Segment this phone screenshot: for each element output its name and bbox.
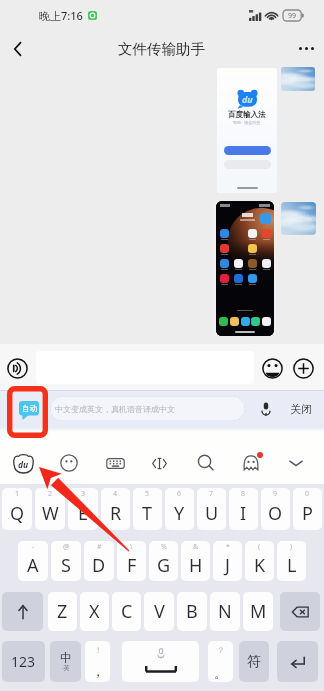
staticText: ·英 bbox=[62, 664, 70, 672]
button[interactable]: Translate input bbox=[50, 396, 245, 421]
staticText: 关闭 bbox=[290, 402, 312, 416]
button[interactable]: C bbox=[112, 592, 141, 631]
staticText: T bbox=[142, 501, 153, 526]
button[interactable]: Avatar bbox=[281, 202, 316, 235]
staticText: 2 bbox=[48, 489, 53, 499]
staticText: 5 bbox=[145, 489, 150, 499]
staticText: N bbox=[218, 599, 232, 624]
button[interactable]: Space bbox=[122, 641, 199, 682]
staticText: \ bbox=[130, 542, 133, 552]
staticText: du bbox=[242, 93, 253, 105]
button[interactable]: Emoticons bbox=[52, 446, 86, 480]
staticText: L bbox=[287, 553, 297, 578]
staticText: B bbox=[186, 599, 198, 624]
button[interactable]: Microphone bbox=[255, 398, 277, 420]
button[interactable]: 1 bbox=[2, 488, 32, 530]
button[interactable]: 7 bbox=[197, 488, 226, 530]
button[interactable]: @ bbox=[51, 541, 81, 581]
staticText: # bbox=[97, 542, 102, 552]
button[interactable]: 123 bbox=[2, 641, 45, 682]
button[interactable]: Keyboard layout bbox=[98, 446, 132, 480]
staticText: 中 bbox=[60, 650, 72, 665]
staticText: Y bbox=[174, 501, 185, 526]
button[interactable]: 8 bbox=[229, 488, 258, 530]
staticText: O bbox=[268, 501, 283, 526]
staticText: 7 bbox=[209, 489, 214, 499]
button[interactable]: * bbox=[213, 541, 242, 581]
button[interactable]: Screenshot bbox=[217, 68, 277, 193]
button[interactable]: 4 bbox=[101, 488, 130, 530]
button[interactable]: X bbox=[80, 592, 109, 631]
staticText: 百度输入法 bbox=[228, 110, 266, 119]
staticText: S bbox=[61, 553, 71, 578]
button[interactable]: Shift bbox=[2, 592, 43, 631]
staticText: ( bbox=[258, 542, 261, 552]
button[interactable]: 5 bbox=[133, 488, 162, 530]
button[interactable]: Backspace bbox=[280, 592, 320, 631]
button[interactable]: Add bbox=[288, 353, 318, 383]
staticText: J bbox=[225, 553, 230, 578]
button[interactable]: Voice input bbox=[2, 353, 32, 383]
staticText: 3 bbox=[81, 489, 86, 499]
staticText: P bbox=[302, 501, 313, 526]
staticText: U bbox=[205, 501, 219, 526]
button[interactable]: 6 bbox=[165, 488, 194, 530]
staticText: D bbox=[92, 553, 106, 578]
button[interactable]: Stickers bbox=[234, 446, 268, 480]
button[interactable]: 中 bbox=[50, 641, 81, 682]
staticText: % bbox=[161, 542, 167, 552]
button[interactable]: Auto translate bbox=[19, 401, 39, 420]
button[interactable]: Cursor control bbox=[142, 446, 176, 480]
button[interactable]: N bbox=[210, 592, 240, 631]
button[interactable]: % bbox=[149, 541, 178, 581]
staticText: du bbox=[18, 459, 29, 471]
staticText: 99 bbox=[288, 11, 297, 21]
staticText: 文件传输助手 bbox=[118, 40, 205, 58]
button[interactable]: 3 bbox=[68, 488, 98, 530]
staticText: C bbox=[121, 599, 133, 624]
staticText: ！ bbox=[94, 645, 102, 655]
staticText: - bbox=[32, 542, 35, 552]
staticText: * bbox=[226, 542, 230, 552]
button[interactable]: Screenshot bbox=[213, 201, 276, 336]
staticText: W bbox=[42, 501, 59, 526]
button[interactable]: Avatar bbox=[281, 67, 315, 91]
button[interactable]: Search bbox=[189, 446, 223, 480]
button[interactable]: \ bbox=[117, 541, 146, 581]
staticText: 123 bbox=[11, 652, 36, 671]
button[interactable]: 9 bbox=[261, 488, 290, 530]
button[interactable]: Z bbox=[48, 592, 77, 631]
button[interactable]: - bbox=[18, 541, 48, 581]
button[interactable]: 2 bbox=[35, 488, 65, 530]
staticText: M bbox=[250, 599, 267, 624]
button[interactable]: M bbox=[243, 592, 273, 631]
staticText: 自动 bbox=[22, 404, 37, 413]
button[interactable]: More bbox=[288, 31, 324, 66]
button[interactable]: & bbox=[181, 541, 210, 581]
staticText: 中文变成英文，真机语音译成中文 bbox=[55, 404, 175, 414]
button[interactable]: ) bbox=[277, 541, 306, 581]
button[interactable]: ？ bbox=[208, 641, 233, 682]
staticText: X bbox=[89, 599, 100, 624]
staticText: G bbox=[157, 553, 171, 578]
staticText: 6 bbox=[177, 489, 182, 499]
button[interactable]: Emoji bbox=[257, 353, 287, 383]
button[interactable]: B bbox=[177, 592, 207, 631]
button[interactable]: 符 bbox=[239, 641, 269, 682]
staticText: V bbox=[154, 599, 165, 624]
button[interactable]: V bbox=[144, 592, 174, 631]
button[interactable]: # bbox=[84, 541, 114, 581]
button[interactable]: ( bbox=[245, 541, 274, 581]
button[interactable]: 关闭 bbox=[284, 398, 318, 420]
staticText: 符 bbox=[247, 653, 261, 671]
button[interactable]: 0 bbox=[293, 488, 322, 530]
staticText: R bbox=[110, 501, 122, 526]
button[interactable]: Baidu IME bbox=[6, 446, 40, 480]
button[interactable]: ！ bbox=[85, 641, 110, 682]
button[interactable]: Collapse keyboard bbox=[279, 446, 313, 480]
button[interactable]: Enter bbox=[277, 641, 318, 682]
button[interactable]: Back bbox=[0, 31, 36, 66]
staticText: E bbox=[78, 501, 89, 526]
staticText: ？ bbox=[217, 645, 225, 655]
